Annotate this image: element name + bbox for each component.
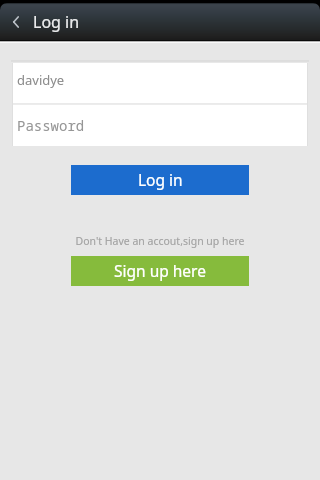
staticText: davidye <box>17 71 65 89</box>
staticText: Sign up here <box>114 260 206 281</box>
staticText: Log in <box>33 11 80 33</box>
button[interactable]: Sign up here <box>71 256 249 286</box>
staticText: Don't Have an accout,sign up here <box>0 234 320 248</box>
button[interactable]: Log in <box>71 165 249 195</box>
staticText: Log in <box>138 169 183 190</box>
button[interactable]: davidye <box>13 63 307 103</box>
button[interactable]: Password <box>13 105 307 146</box>
button[interactable]: Don't Have an accout,sign up here <box>0 232 320 246</box>
button[interactable]: Back <box>2 3 30 40</box>
staticText: Password <box>17 116 85 135</box>
